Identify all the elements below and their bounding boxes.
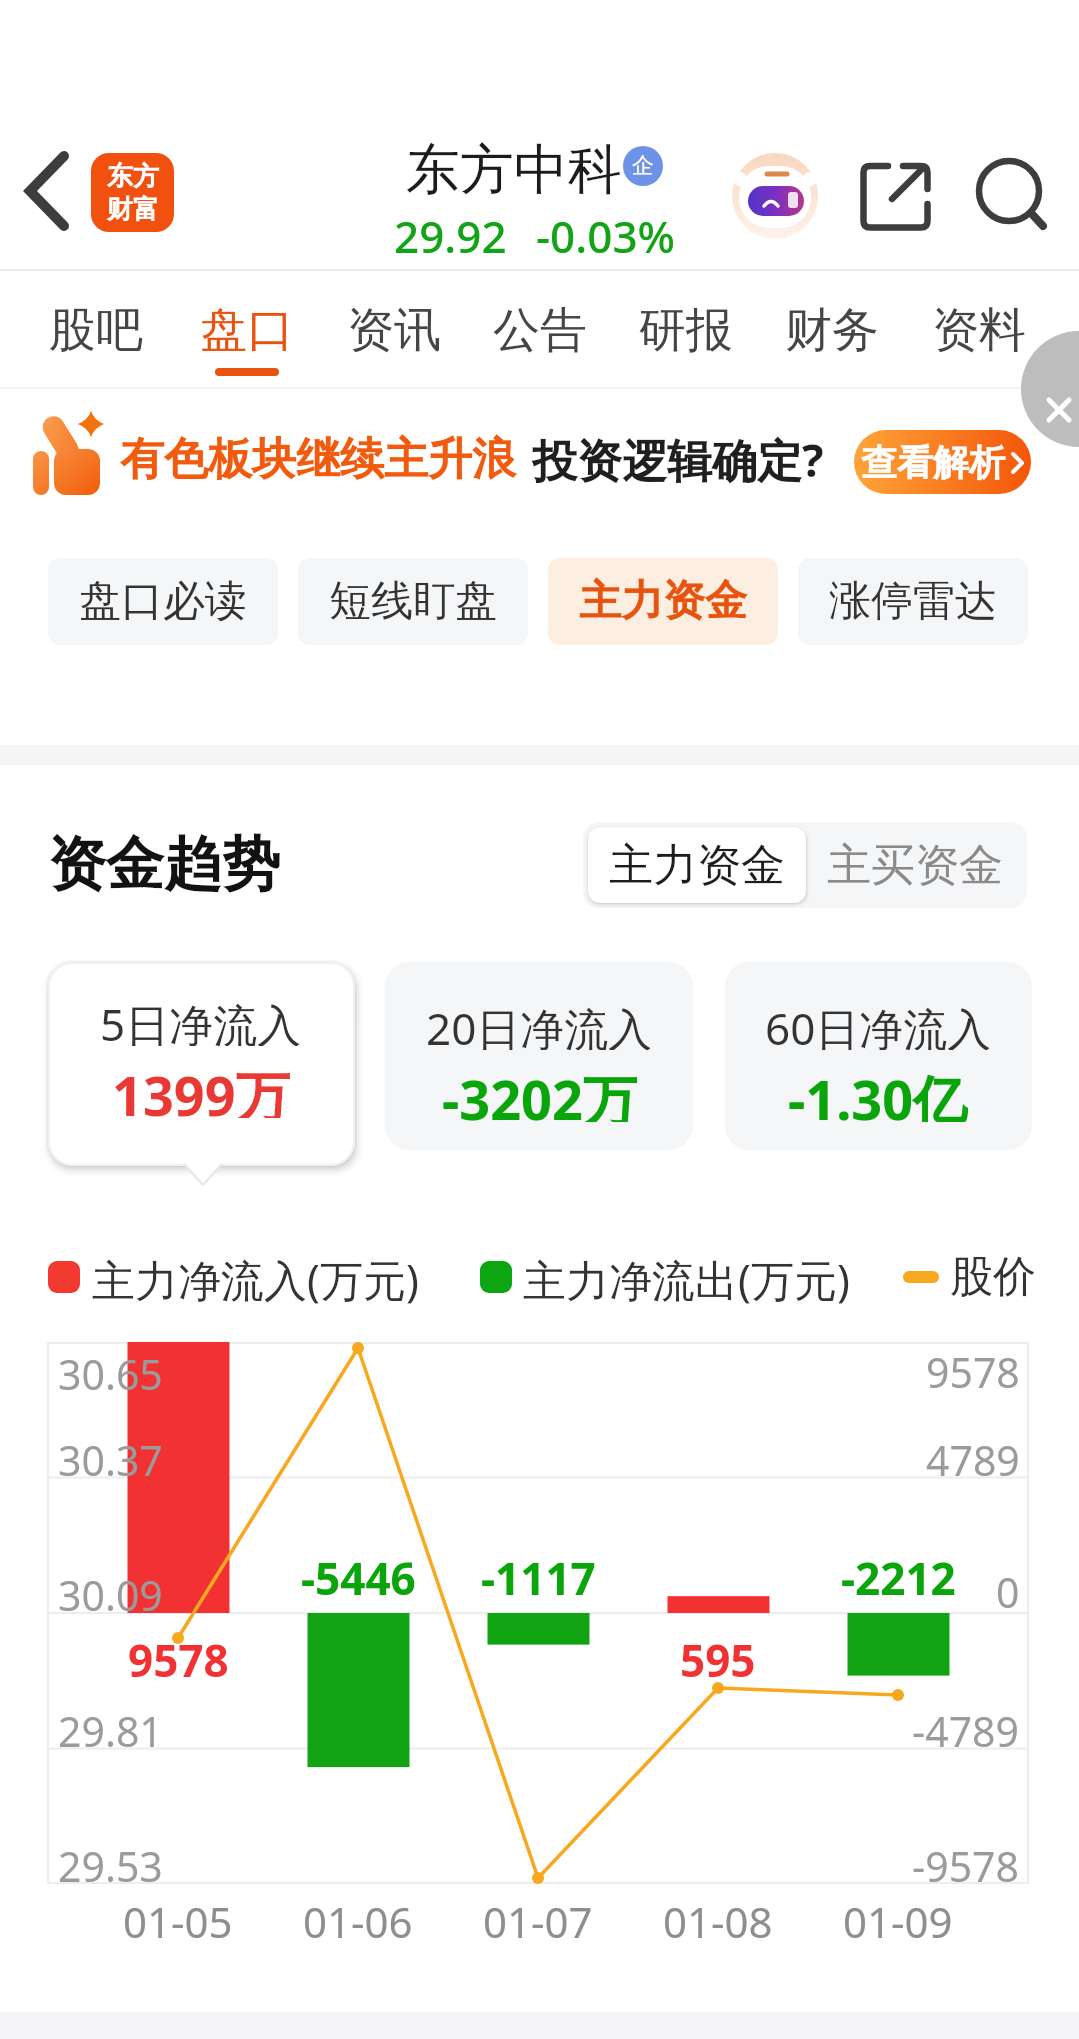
staticText: -1.30亿 [788, 1062, 968, 1122]
staticText: -4789 [912, 1703, 1020, 1755]
staticText: 20日净流入 [426, 998, 653, 1050]
button[interactable]: 主买资金 [806, 827, 1024, 903]
staticText: 5日净流入 [100, 994, 302, 1046]
staticText: 主力资金 [609, 838, 785, 893]
button[interactable]: 公告 [476, 290, 604, 370]
staticText: 公告 [493, 301, 587, 360]
staticText: 01-08 [663, 1893, 773, 1947]
button[interactable]: 涨停雷达 [798, 558, 1028, 645]
button[interactable]: 股吧 [32, 290, 160, 370]
staticText: 30.65 [58, 1346, 163, 1398]
button[interactable]: 查看解析 [854, 430, 1031, 494]
staticText: 短线盯盘 [329, 575, 497, 628]
staticText: 研报 [639, 301, 733, 360]
button[interactable]: 财务 [768, 290, 896, 370]
button[interactable] [385, 962, 693, 1150]
staticText: 涨停雷达 [829, 575, 997, 628]
staticText: 主力净流出(万元) [523, 1250, 850, 1304]
staticText: 01-06 [303, 1893, 413, 1947]
staticText: 股吧 [49, 301, 143, 360]
button[interactable]: 研报 [622, 290, 750, 370]
button[interactable] [1021, 389, 1079, 447]
staticText: 主力净流入(万元) [92, 1250, 419, 1304]
staticText: 股价 [950, 1250, 1036, 1304]
staticText: 1399万 [112, 1058, 290, 1118]
staticText: 01-09 [843, 1893, 953, 1947]
button[interactable]: 盘口必读 [48, 558, 278, 645]
button[interactable]: 盘口 [183, 290, 311, 370]
button[interactable]: 短线盯盘 [298, 558, 528, 645]
button[interactable]: 资料 [915, 290, 1043, 370]
staticText: 查看解析 [861, 440, 1005, 485]
staticText: -3202万 [442, 1062, 637, 1122]
button[interactable] [48, 962, 355, 1166]
button[interactable]: 有色板块继续主升浪 [0, 389, 1079, 529]
staticText: 01-05 [123, 1893, 233, 1947]
staticText: 东方 [107, 160, 159, 193]
staticText: 29.92 [394, 206, 507, 254]
staticText: 投资逻辑确定? [532, 429, 824, 489]
staticText: 有色板块继续主升浪 [120, 432, 516, 487]
staticText: 企 [632, 152, 654, 180]
staticText: 主买资金 [827, 838, 1003, 893]
staticText: 财务 [785, 301, 879, 360]
staticText: -1117 [481, 1548, 596, 1602]
button[interactable]: 主力资金 [588, 827, 806, 903]
staticText: 4789 [926, 1432, 1020, 1484]
staticText: 29.81 [58, 1703, 163, 1755]
button[interactable] [725, 962, 1032, 1150]
staticText: 盘口必读 [79, 575, 247, 628]
staticText: 资料 [932, 301, 1026, 360]
staticText: 9578 [926, 1344, 1020, 1396]
staticText: 60日净流入 [765, 998, 992, 1050]
staticText: 主力资金 [579, 575, 747, 628]
staticText: 0 [996, 1564, 1020, 1616]
staticText: 30.09 [58, 1567, 163, 1619]
button[interactable]: 主力资金 [548, 558, 778, 645]
button[interactable] [731, 152, 819, 240]
button[interactable]: 资讯 [330, 290, 458, 370]
staticText: 30.37 [58, 1432, 163, 1484]
staticText: 财富 [107, 193, 159, 226]
staticText: -9578 [912, 1838, 1020, 1890]
button[interactable] [968, 150, 1052, 234]
staticText: 东方中科 [406, 136, 622, 196]
staticText: 盘口 [200, 301, 294, 360]
button[interactable]: 东方 [91, 153, 174, 232]
button[interactable] [16, 146, 86, 238]
staticText: -2212 [841, 1548, 956, 1602]
staticText: 01-07 [483, 1893, 593, 1947]
staticText: 资金趋势 [48, 828, 280, 901]
staticText: -5446 [301, 1548, 416, 1602]
staticText: 资讯 [347, 301, 441, 360]
staticText: 29.53 [58, 1838, 163, 1890]
button[interactable] [856, 158, 934, 236]
staticText: 595 [680, 1630, 756, 1684]
staticText: 9578 [128, 1630, 229, 1684]
staticText: -0.03% [536, 206, 676, 254]
